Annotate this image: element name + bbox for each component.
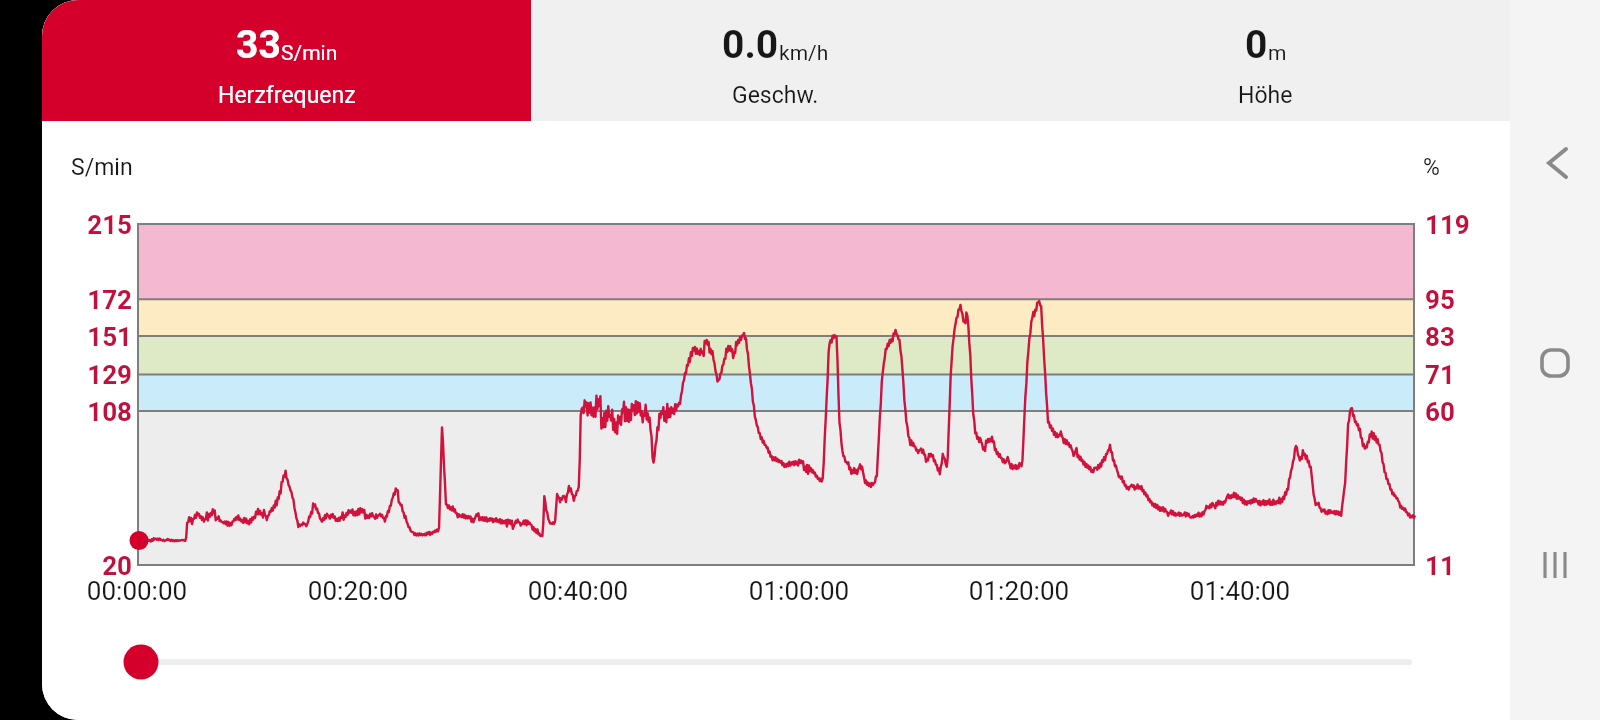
- staticText: 00:20:00: [258, 576, 458, 606]
- staticText: 172: [58, 285, 132, 315]
- staticText: 119: [1425, 210, 1470, 240]
- staticText: km/h: [779, 41, 829, 66]
- staticText: 11: [1425, 551, 1455, 581]
- button[interactable]: Playback position: [124, 643, 160, 679]
- staticText: 151: [58, 322, 132, 352]
- button[interactable]: Home: [1523, 331, 1587, 395]
- button[interactable]: 33: [42, 0, 531, 121]
- button[interactable]: Back: [1523, 131, 1587, 195]
- staticText: 83: [1425, 322, 1455, 352]
- staticText: 01:40:00: [1140, 576, 1340, 606]
- staticText: 01:20:00: [919, 576, 1119, 606]
- staticText: 0: [1245, 22, 1268, 68]
- staticText: 71: [1425, 360, 1455, 390]
- staticText: 95: [1425, 285, 1455, 315]
- staticText: 0.0: [722, 22, 779, 68]
- staticText: 108: [58, 397, 132, 427]
- button[interactable]: 0.0: [531, 0, 1020, 121]
- staticText: 33: [236, 22, 281, 68]
- staticText: 129: [58, 360, 132, 390]
- staticText: m: [1268, 41, 1287, 66]
- staticText: S/min: [71, 154, 133, 181]
- staticText: %: [1423, 154, 1440, 181]
- staticText: Herzfrequenz: [218, 82, 356, 109]
- staticText: 00:40:00: [478, 576, 678, 606]
- button[interactable]: Recent apps: [1523, 533, 1587, 597]
- staticText: 215: [58, 210, 132, 240]
- button[interactable]: 0: [1020, 0, 1510, 121]
- staticText: 20: [58, 551, 132, 581]
- staticText: 00:00:00: [42, 576, 237, 606]
- staticText: Höhe: [1238, 82, 1293, 109]
- staticText: S/min: [281, 41, 338, 66]
- staticText: Geschw.: [732, 82, 819, 109]
- staticText: 60: [1425, 397, 1455, 427]
- staticText: 01:00:00: [699, 576, 899, 606]
